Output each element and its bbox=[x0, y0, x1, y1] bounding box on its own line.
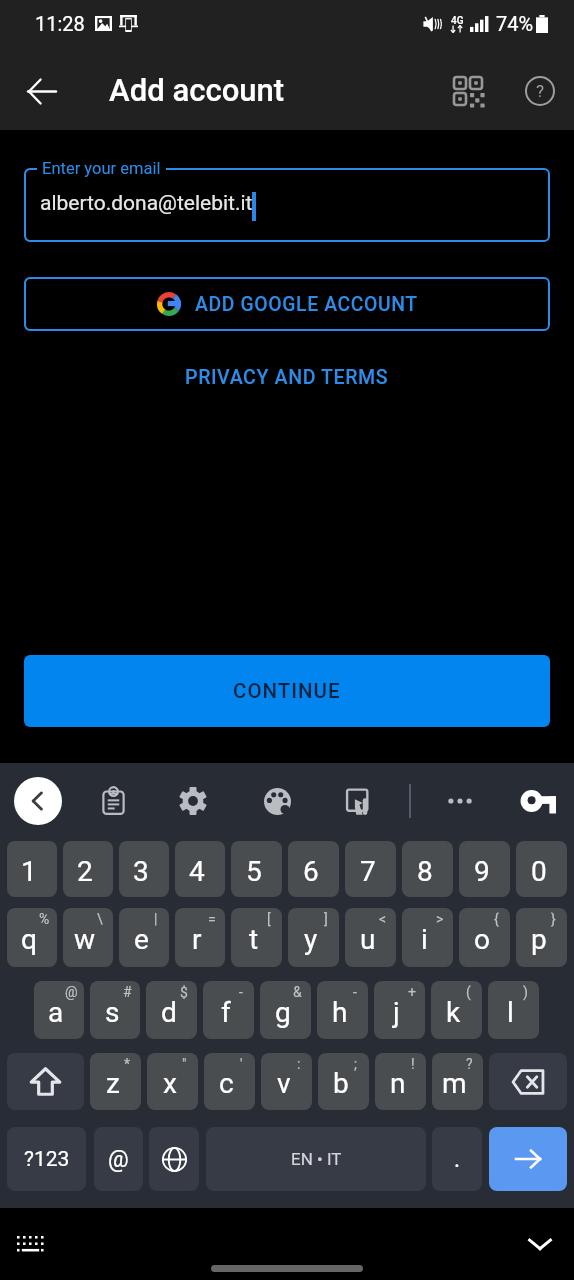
button[interactable]: m bbox=[432, 1053, 483, 1110]
button[interactable]: Back bbox=[18, 68, 65, 115]
button[interactable]: Themes bbox=[255, 779, 299, 823]
button[interactable]: 5 bbox=[231, 841, 282, 897]
button[interactable]: f bbox=[203, 981, 254, 1039]
staticText: 2 bbox=[77, 855, 93, 888]
button[interactable]: Enter bbox=[489, 1127, 567, 1191]
button[interactable]: c bbox=[204, 1053, 255, 1110]
button[interactable]: alberto.dona@telebit.it bbox=[24, 168, 550, 242]
button[interactable]: @ bbox=[94, 1127, 143, 1191]
button[interactable]: Hide keyboard bbox=[10, 1222, 54, 1266]
staticText: a bbox=[48, 996, 64, 1029]
staticText: - bbox=[239, 984, 243, 1000]
staticText: 8 bbox=[417, 855, 433, 888]
button[interactable]: Resize keyboard bbox=[337, 779, 381, 823]
button[interactable]: Clipboard bbox=[91, 779, 135, 823]
staticText: 74% bbox=[496, 12, 534, 35]
button[interactable]: n bbox=[375, 1053, 426, 1110]
button[interactable]: Help bbox=[516, 67, 564, 115]
staticText: " bbox=[182, 1056, 187, 1072]
button[interactable]: p bbox=[516, 908, 567, 967]
button[interactable]: Back bbox=[14, 777, 62, 825]
button[interactable]: 6 bbox=[288, 841, 339, 897]
button[interactable]: l bbox=[488, 981, 539, 1039]
staticText: \ bbox=[97, 911, 103, 927]
staticText: # bbox=[123, 984, 132, 1000]
staticText: v bbox=[277, 1067, 291, 1100]
button[interactable]: PRIVACY AND TERMS bbox=[177, 358, 397, 397]
button[interactable]: 2 bbox=[63, 841, 113, 897]
button[interactable]: 3 bbox=[119, 841, 169, 897]
staticText: * bbox=[124, 1056, 131, 1072]
staticText: h bbox=[332, 996, 348, 1029]
button[interactable]: Backspace bbox=[489, 1053, 567, 1110]
staticText: ! bbox=[411, 1056, 415, 1072]
staticText: n bbox=[390, 1067, 406, 1100]
staticText: u bbox=[360, 923, 376, 956]
button[interactable]: k bbox=[431, 981, 482, 1039]
button[interactable]: u bbox=[345, 908, 396, 967]
button[interactable]: j bbox=[374, 981, 425, 1039]
button[interactable]: z bbox=[90, 1053, 141, 1110]
button[interactable]: CONTINUE bbox=[24, 655, 550, 727]
staticText: m bbox=[442, 1067, 467, 1100]
button[interactable]: . bbox=[432, 1127, 482, 1191]
button[interactable]: Collapse bbox=[518, 1222, 562, 1266]
staticText: x bbox=[163, 1067, 177, 1100]
button[interactable]: o bbox=[459, 908, 510, 967]
button[interactable]: Passwords bbox=[517, 779, 561, 823]
staticText: ?123 bbox=[24, 1147, 70, 1172]
button[interactable]: b bbox=[318, 1053, 369, 1110]
button[interactable]: More options bbox=[438, 779, 482, 823]
button[interactable]: d bbox=[146, 981, 197, 1039]
button[interactable]: Change language bbox=[149, 1127, 199, 1191]
button[interactable]: 9 bbox=[459, 841, 510, 897]
staticText: ? bbox=[536, 81, 545, 101]
staticText: CONTINUE bbox=[233, 679, 341, 703]
staticText: b bbox=[333, 1067, 349, 1100]
button[interactable]: e bbox=[119, 908, 169, 967]
button[interactable]: g bbox=[260, 981, 311, 1039]
button[interactable]: s bbox=[90, 981, 140, 1039]
button[interactable]: x bbox=[147, 1053, 198, 1110]
button[interactable]: EN • IT bbox=[206, 1127, 426, 1191]
staticText: ; bbox=[354, 1056, 357, 1072]
button[interactable]: 7 bbox=[345, 841, 396, 897]
button[interactable]: h bbox=[317, 981, 368, 1039]
button[interactable]: Scan QR code bbox=[444, 67, 492, 115]
staticText: . bbox=[454, 1146, 461, 1173]
staticText: 5 bbox=[246, 855, 262, 888]
staticText: j bbox=[393, 996, 400, 1029]
staticText: PRIVACY AND TERMS bbox=[185, 366, 389, 389]
button[interactable]: w bbox=[63, 908, 113, 967]
button[interactable]: 0 bbox=[516, 841, 567, 897]
staticText: q bbox=[21, 923, 37, 956]
staticText: ( bbox=[466, 984, 471, 1000]
staticText: 7 bbox=[360, 855, 376, 888]
button[interactable]: 4 bbox=[175, 841, 225, 897]
staticText: t bbox=[249, 923, 259, 956]
button[interactable]: ADD GOOGLE ACCOUNT bbox=[24, 277, 550, 331]
button[interactable]: Settings bbox=[171, 779, 215, 823]
staticText: w bbox=[74, 923, 96, 956]
button[interactable]: Shift bbox=[7, 1053, 84, 1110]
button[interactable]: 1 bbox=[7, 841, 57, 897]
staticText: > bbox=[436, 911, 444, 927]
staticText: Enter your email bbox=[42, 159, 161, 178]
button[interactable]: r bbox=[175, 908, 225, 967]
button[interactable]: a bbox=[34, 981, 84, 1039]
staticText: ] bbox=[324, 911, 328, 927]
staticText: 6 bbox=[303, 855, 319, 888]
staticText: $ bbox=[180, 984, 188, 1000]
button[interactable]: t bbox=[231, 908, 282, 967]
button[interactable]: i bbox=[402, 908, 453, 967]
staticText: l bbox=[507, 996, 514, 1029]
staticText: 9 bbox=[474, 855, 490, 888]
staticText: p bbox=[531, 923, 547, 956]
button[interactable]: q bbox=[7, 908, 57, 967]
button[interactable]: y bbox=[288, 908, 339, 967]
button[interactable]: 8 bbox=[402, 841, 453, 897]
button[interactable]: ?123 bbox=[7, 1127, 86, 1191]
staticText: ' bbox=[240, 1056, 243, 1072]
button[interactable]: v bbox=[261, 1053, 312, 1110]
staticText: & bbox=[293, 984, 302, 1000]
